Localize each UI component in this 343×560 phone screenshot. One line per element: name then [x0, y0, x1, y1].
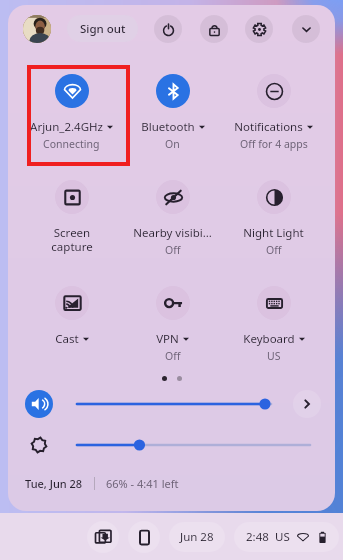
staticText: VPN — [156, 331, 179, 347]
button[interactable] — [77, 394, 271, 414]
staticText: Bluetooth — [141, 119, 195, 135]
button[interactable]: Cast — [21, 264, 122, 370]
button[interactable]: Settings — [245, 15, 273, 43]
button[interactable] — [77, 435, 310, 455]
staticText: Notifications — [234, 119, 303, 135]
staticText: Night Light — [243, 225, 304, 241]
button[interactable]: Account — [23, 15, 51, 43]
button[interactable]: Mute volume — [25, 390, 53, 418]
button[interactable]: Power — [154, 15, 182, 43]
button[interactable]: Collapse — [292, 15, 320, 43]
staticText: Sign out — [80, 21, 126, 37]
button[interactable]: Phone hub — [128, 521, 160, 553]
staticText: 2:48 — [246, 529, 269, 545]
button[interactable]: Nearby visibi… — [122, 158, 223, 264]
staticText: Screen capture — [51, 225, 93, 254]
button[interactable]: Launcher — [87, 521, 119, 553]
staticText: Nearby visibi… — [133, 225, 212, 241]
staticText: Keyboard — [243, 331, 295, 347]
staticText: On — [165, 137, 180, 151]
button[interactable]: Keyboard — [223, 264, 324, 370]
staticText: Arjun_2.4GHz — [30, 119, 103, 135]
staticText: Tue, Jun 28 — [25, 476, 83, 491]
staticText: Off — [266, 243, 282, 257]
staticText: Jun 28 — [180, 529, 214, 545]
button[interactable]: Lock screen — [200, 15, 228, 43]
button[interactable]: Status tray — [234, 522, 339, 552]
button[interactable]: Brightness — [25, 431, 53, 459]
button[interactable]: Jun 28 — [169, 522, 225, 552]
staticText: Off for 4 apps — [240, 137, 308, 151]
button[interactable]: Arjun_2.4GHz — [21, 52, 122, 158]
button[interactable]: Notifications — [223, 52, 324, 158]
button[interactable]: VPN — [122, 264, 223, 370]
staticText: 66% - 4:41 left — [106, 476, 179, 491]
staticText: US — [275, 529, 290, 545]
button[interactable]: Screen capture — [21, 158, 122, 264]
staticText: Off — [165, 243, 181, 257]
staticText: Cast — [55, 331, 79, 347]
button[interactable]: Bluetooth — [122, 52, 223, 158]
button[interactable]: Night Light — [223, 158, 324, 264]
button[interactable]: Sign out — [67, 15, 138, 42]
staticText: US — [267, 349, 281, 363]
staticText: Connecting — [43, 137, 100, 151]
button[interactable]: Audio settings — [293, 390, 321, 418]
staticText: Off — [165, 349, 181, 363]
